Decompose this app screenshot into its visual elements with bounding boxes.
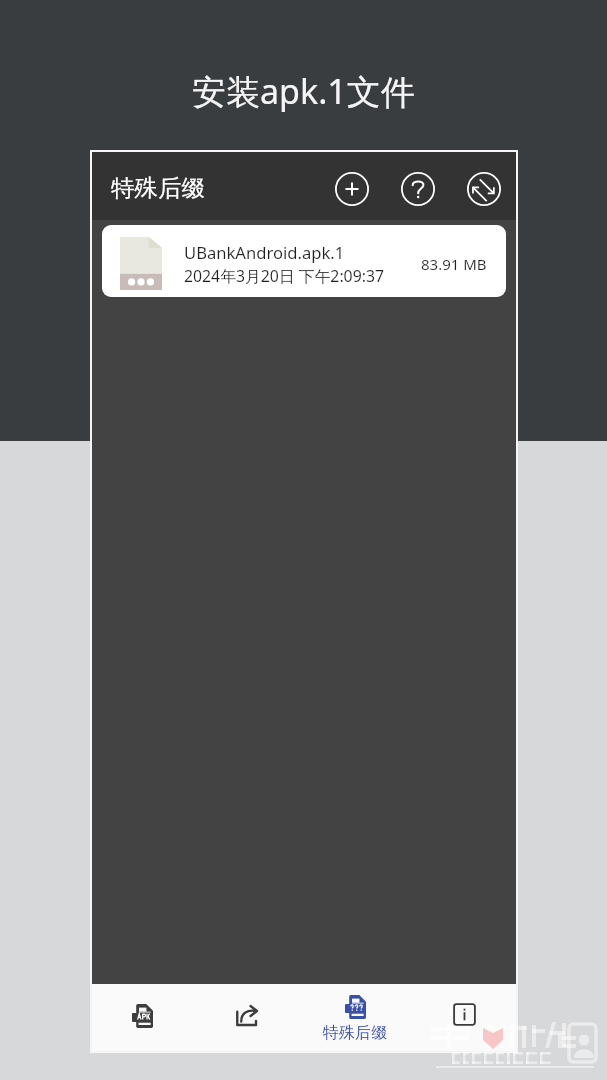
button[interactable]: 特殊后缀 <box>304 984 410 1051</box>
button[interactable]: Sort <box>462 167 506 211</box>
button[interactable]: APK files <box>92 984 198 1051</box>
button[interactable]: Help <box>396 167 440 211</box>
staticText: 安装apk.1文件 <box>192 68 415 114</box>
button[interactable]: Info <box>410 984 516 1051</box>
staticText: 83.91 MB <box>421 254 487 274</box>
button[interactable]: UBankAndroid.apk.1 <box>102 225 506 297</box>
staticText: 2024年3月20日 下午2:09:37 <box>184 265 384 287</box>
staticText: 特殊后缀 <box>323 1023 387 1043</box>
staticText: UBankAndroid.apk.1 <box>184 241 345 264</box>
staticText: 特殊后缀 <box>111 173 205 203</box>
button[interactable]: Share <box>198 984 304 1051</box>
button[interactable]: Add <box>330 167 374 211</box>
